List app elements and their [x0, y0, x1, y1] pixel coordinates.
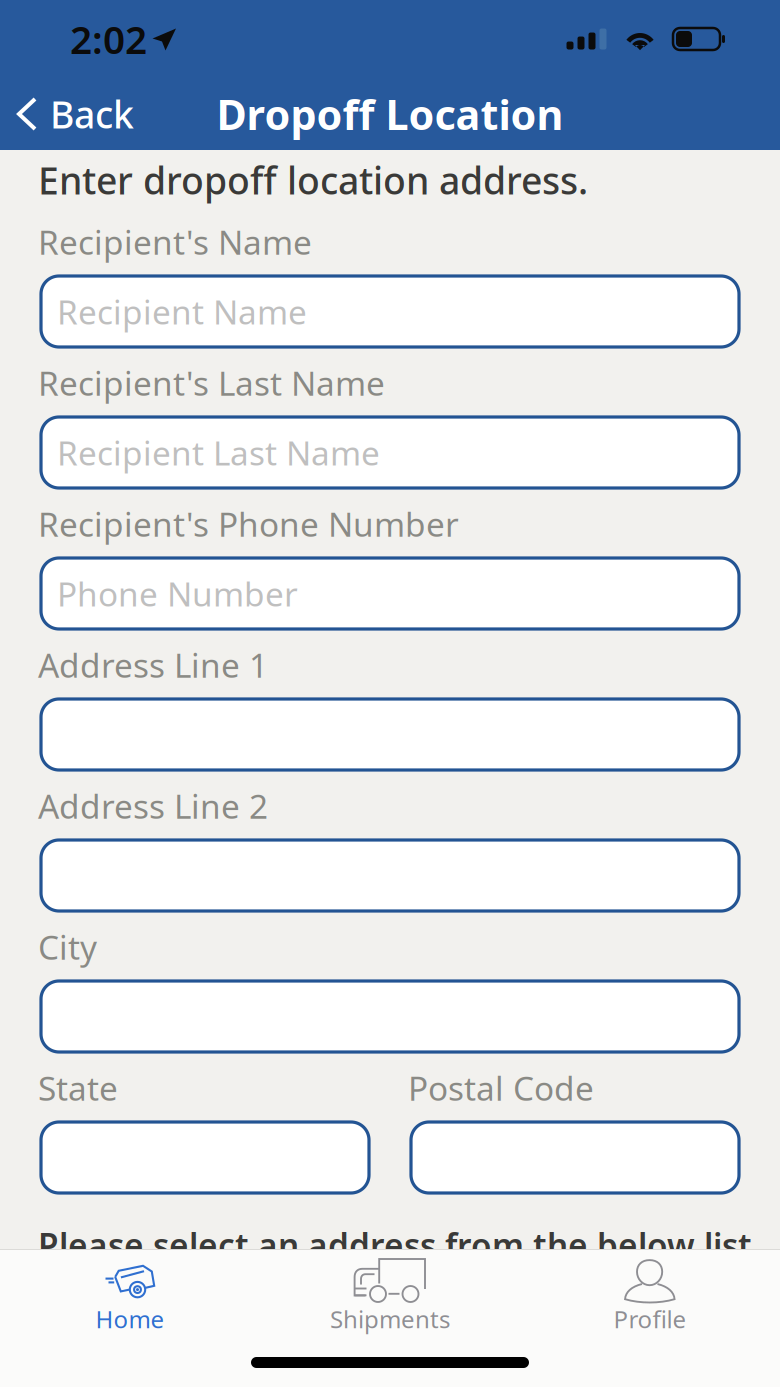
button[interactable]: Recipient's Phone Number: [41, 558, 739, 629]
staticText: Enter dropoff location address.: [38, 155, 588, 205]
button[interactable]: City: [41, 981, 739, 1052]
button[interactable]: State: [41, 1122, 369, 1193]
staticText: Recipient's Name: [38, 220, 312, 264]
staticText: 2:02: [70, 13, 147, 65]
button[interactable]: Address Line 2: [41, 840, 739, 911]
staticText: Shipments: [330, 1303, 450, 1335]
staticText: State: [38, 1066, 118, 1110]
button[interactable]: Recipient's Name: [41, 276, 739, 347]
button[interactable]: Back: [0, 78, 148, 150]
staticText: Please select an address from the below …: [38, 1223, 752, 1267]
button[interactable]: Shipments: [260, 1257, 520, 1327]
staticText: Back: [50, 89, 134, 139]
staticText: City: [38, 925, 97, 969]
staticText: Recipient Name: [57, 289, 307, 334]
staticText: Home: [95, 1303, 164, 1335]
staticText: Recipient's Phone Number: [38, 502, 459, 546]
button[interactable]: Postal Code: [411, 1122, 739, 1193]
staticText: Recipient Last Name: [57, 430, 380, 475]
staticText: Postal Code: [408, 1066, 594, 1110]
staticText: Address Line 2: [38, 784, 268, 828]
button[interactable]: Profile: [520, 1257, 780, 1327]
staticText: Address Line 1: [38, 643, 268, 687]
staticText: Recipient's Last Name: [38, 361, 385, 405]
button[interactable]: Address Line 1: [41, 699, 739, 770]
button[interactable]: Home: [0, 1257, 260, 1327]
staticText: Phone Number: [57, 571, 298, 616]
button[interactable]: Recipient's Last Name: [41, 417, 739, 488]
staticText: Profile: [613, 1303, 686, 1335]
staticText: Dropoff Location: [216, 87, 563, 141]
